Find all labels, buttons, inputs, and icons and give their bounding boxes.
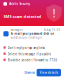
staticText: To reset your password click on	[10, 32, 54, 35]
staticText: Mobile Security	[9, 2, 30, 6]
staticText: Block the sender / forward to 7726	[7, 58, 57, 62]
staticText: Don't reply or tap any links	[7, 46, 44, 50]
staticText: Delete this message if possible	[7, 52, 51, 56]
staticText: View details	[40, 71, 58, 74]
button[interactable]: Dismiss	[22, 69, 37, 76]
staticText: Messages	[10, 28, 22, 32]
button[interactable]: View details	[37, 69, 61, 76]
staticText: vodaf-secure.link/login	[10, 36, 42, 39]
staticText: SMS scam detected	[3, 14, 41, 19]
staticText: Today 15:30	[44, 28, 61, 32]
staticText: Dismiss	[24, 71, 34, 74]
